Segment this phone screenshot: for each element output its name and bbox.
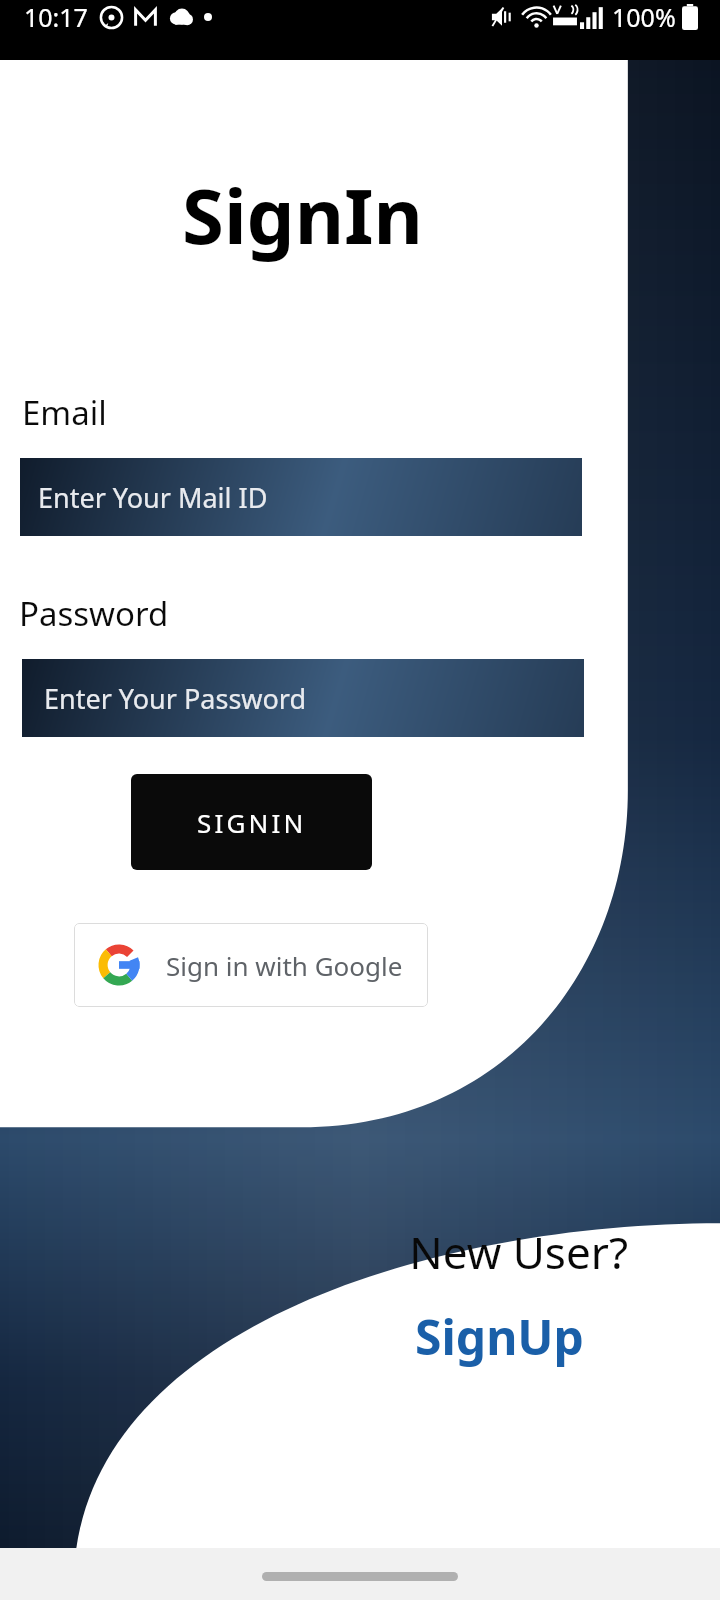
staticText: Password [19,591,169,636]
staticText: 10:17 [24,0,88,34]
staticText: SignIn [182,163,423,267]
staticText: Enter Your Password [44,680,307,717]
button[interactable]: Sign in with Google [74,923,428,1007]
button[interactable]: Email input [20,458,582,536]
staticText: Enter Your Mail ID [38,479,268,516]
staticText: New User? [409,1222,628,1282]
staticText: Sign in with Google [166,948,403,983]
staticText: Email [22,390,107,435]
button[interactable]: SIGNIN [131,774,372,870]
button[interactable]: SignUp [415,1304,584,1369]
button[interactable]: Password input [22,659,584,737]
staticText: SIGNIN [197,805,307,840]
staticText: 100% [612,0,676,34]
staticText: SignUp [415,1304,584,1369]
